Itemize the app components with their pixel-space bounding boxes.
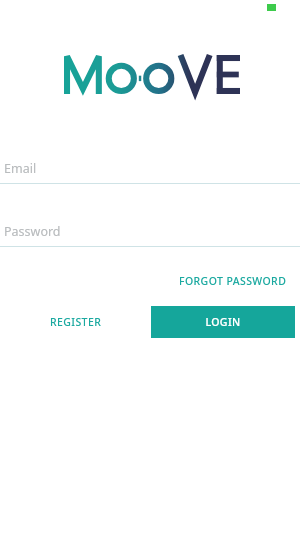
button[interactable]: Password (0, 221, 300, 247)
button[interactable]: Email (0, 158, 300, 184)
staticText: Email (4, 160, 37, 177)
button[interactable]: FORGOT PASSWORD (166, 269, 300, 293)
button[interactable]: LOGIN (151, 306, 295, 338)
staticText: FORGOT PASSWORD (179, 274, 287, 288)
staticText: Password (4, 223, 61, 240)
staticText: REGISTER (50, 315, 102, 329)
button[interactable]: REGISTER (0, 306, 151, 338)
staticText: LOGIN (205, 315, 241, 329)
